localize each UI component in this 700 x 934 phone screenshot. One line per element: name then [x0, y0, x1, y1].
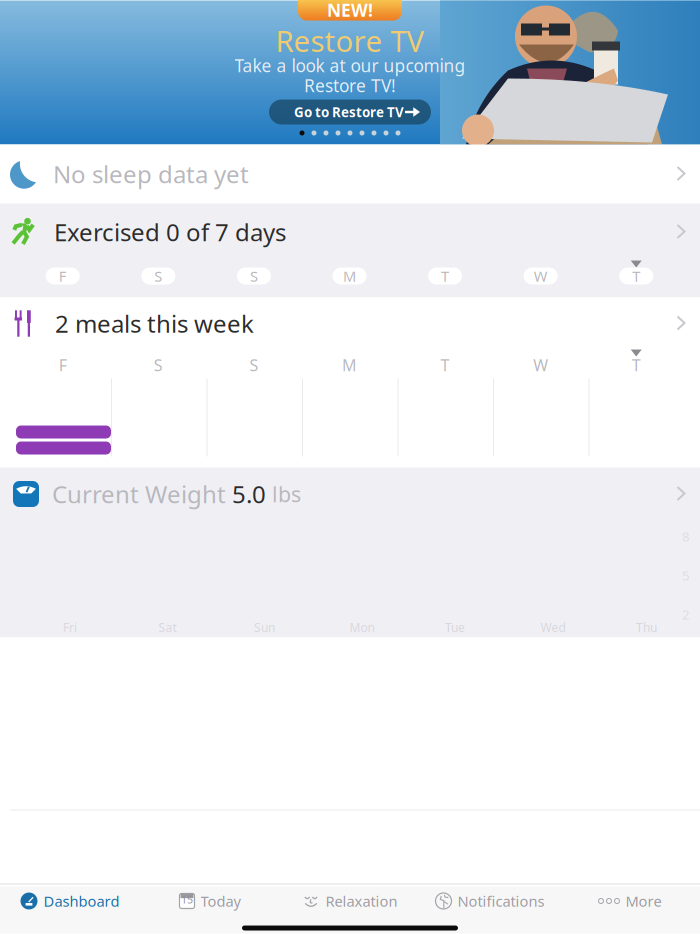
button[interactable]: Go to Restore TV: [269, 99, 431, 124]
button[interactable]: Exercised 0 of 7 days: [0, 203, 700, 297]
staticText: 15: [181, 892, 193, 907]
staticText: Sun: [254, 619, 275, 635]
staticText: 2 meals this week: [55, 308, 254, 339]
staticText: S: [249, 354, 258, 376]
staticText: Current Weight: [52, 478, 232, 510]
button[interactable]: Notifications: [420, 884, 560, 917]
staticText: Go to Restore TV: [294, 103, 404, 121]
staticText: Exercised 0 of 7 days: [54, 216, 286, 248]
staticText: Today: [200, 891, 240, 911]
staticText: Wed: [540, 619, 565, 635]
staticText: Sat: [158, 619, 176, 635]
button[interactable]: Current Weight: [0, 467, 700, 637]
staticText: W: [533, 354, 548, 376]
staticText: T: [441, 266, 449, 286]
staticText: Tue: [445, 619, 465, 635]
staticText: W: [534, 266, 548, 286]
staticText: Thu: [636, 619, 657, 635]
staticText: Notifications: [457, 891, 544, 911]
staticText: T: [441, 354, 450, 376]
staticText: 5: [682, 566, 690, 584]
staticText: Dashboard: [43, 891, 119, 911]
staticText: 2: [682, 605, 690, 623]
staticText: Relaxation: [325, 891, 397, 911]
button[interactable]: 15: [140, 884, 280, 917]
staticText: M: [342, 354, 357, 376]
staticText: Restore TV: [275, 21, 424, 60]
staticText: Mon: [349, 619, 374, 635]
button[interactable]: More: [560, 884, 700, 917]
staticText: M: [343, 266, 356, 286]
staticText: F: [59, 354, 67, 376]
staticText: 8: [682, 527, 690, 545]
button[interactable]: Relaxation: [280, 884, 420, 917]
button[interactable]: No sleep data yet: [0, 144, 700, 203]
button[interactable]: Dashboard: [0, 884, 140, 917]
staticText: S: [154, 354, 163, 376]
staticText: No sleep data yet: [53, 158, 249, 190]
staticText: 5.0: [232, 478, 266, 510]
staticText: Restore TV!: [304, 74, 396, 97]
staticText: Take a look at our upcoming: [234, 54, 465, 77]
staticText: Fri: [63, 619, 77, 635]
button[interactable]: 2 meals this week: [0, 297, 700, 467]
staticText: lbs: [266, 480, 301, 508]
staticText: T: [632, 354, 641, 376]
staticText: S: [250, 266, 258, 286]
staticText: NEW!: [327, 0, 373, 21]
staticText: S: [154, 266, 162, 286]
staticText: More: [625, 891, 661, 911]
staticText: F: [59, 266, 67, 286]
staticText: T: [632, 266, 640, 286]
